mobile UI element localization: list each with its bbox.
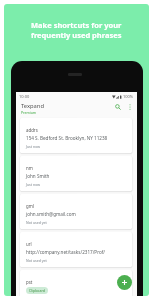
staticText: Just now xyxy=(26,182,40,187)
button[interactable]: More options xyxy=(124,101,136,113)
button[interactable]: gml xyxy=(20,194,132,229)
button[interactable]: Search xyxy=(112,101,124,113)
staticText: John Smith xyxy=(26,173,50,179)
staticText: pst xyxy=(26,279,33,285)
staticText: addrs xyxy=(26,127,38,133)
staticText: Not used yet xyxy=(26,258,47,263)
staticText: Make shortcuts for your xyxy=(31,20,122,30)
staticText: Premium xyxy=(21,110,37,115)
button[interactable]: Add shortcut xyxy=(117,275,132,290)
button[interactable]: addrs xyxy=(20,118,132,153)
button[interactable]: url xyxy=(20,232,132,267)
staticText: Just now xyxy=(26,144,40,149)
staticText: nm xyxy=(26,165,33,171)
button[interactable]: pst xyxy=(20,270,132,296)
staticText: Not used yet xyxy=(26,220,47,225)
staticText: url xyxy=(26,241,32,247)
button[interactable]: nm xyxy=(20,156,132,191)
staticText: 154 S. Bedford St. Brooklyn, NY 11238 xyxy=(26,135,108,141)
staticText: 100% xyxy=(123,94,134,99)
staticText: 10:00 xyxy=(19,94,30,99)
staticText: Clipboard xyxy=(29,288,45,293)
staticText: http://company.net/tasks/2317/Prof/ xyxy=(26,249,106,255)
staticText: Texpand xyxy=(21,102,45,110)
staticText: frequently used phrases xyxy=(31,30,122,40)
staticText: john.smith@gmail.com xyxy=(26,211,76,217)
staticText: gml xyxy=(26,203,34,209)
